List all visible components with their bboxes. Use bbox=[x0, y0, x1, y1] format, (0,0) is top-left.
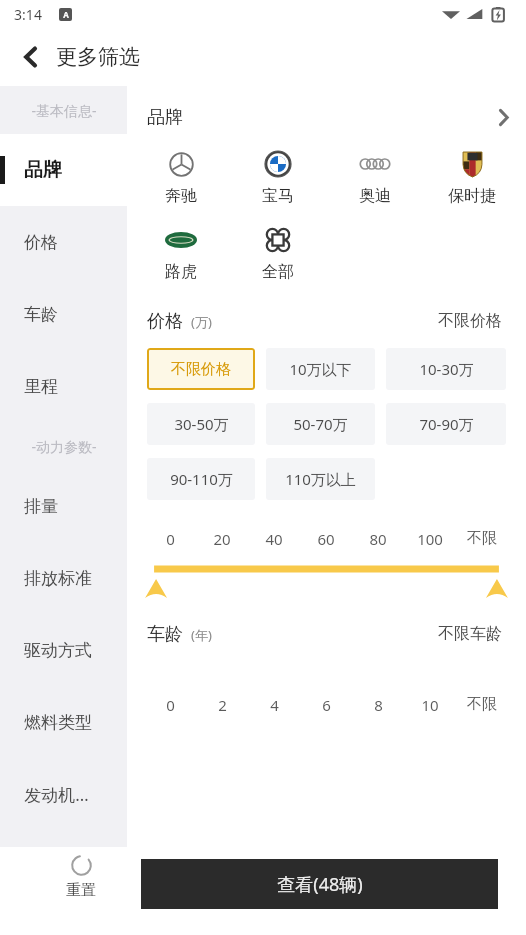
staticText: 0 bbox=[166, 529, 175, 549]
staticText: 路虎 bbox=[165, 262, 197, 282]
staticText: (年) bbox=[191, 626, 212, 644]
button[interactable]: 路虎 bbox=[133, 224, 229, 282]
staticText: 查看(48辆) bbox=[277, 872, 363, 897]
staticText: 全部 bbox=[262, 262, 294, 282]
staticText: 2 bbox=[218, 695, 227, 715]
staticText: 40 bbox=[265, 529, 283, 549]
staticText: 奔驰 bbox=[165, 186, 197, 206]
staticText: 重置 bbox=[66, 881, 96, 900]
staticText: 不限价格 bbox=[171, 360, 231, 379]
staticText: -动力参数- bbox=[31, 437, 97, 456]
button[interactable]: 30-50万 bbox=[147, 403, 255, 445]
staticText: 车龄 bbox=[24, 304, 58, 325]
button[interactable]: 燃料类型 bbox=[0, 686, 127, 758]
button[interactable]: 全部 bbox=[229, 224, 326, 282]
staticText: 8 bbox=[374, 695, 383, 715]
button[interactable]: 排量 bbox=[0, 470, 127, 542]
staticText: 不限价格 bbox=[438, 311, 502, 331]
staticText: 60 bbox=[317, 529, 335, 549]
staticText: 驱动方式 bbox=[24, 640, 92, 661]
staticText: 燃料类型 bbox=[24, 712, 92, 733]
button[interactable]: 价格 bbox=[0, 206, 127, 278]
button[interactable]: 50-70万 bbox=[266, 403, 375, 445]
button[interactable]: 品牌 bbox=[0, 134, 127, 206]
staticText: 排量 bbox=[24, 496, 58, 517]
staticText: A bbox=[63, 9, 69, 20]
staticText: 10万以下 bbox=[289, 359, 352, 379]
staticText: 90-110万 bbox=[170, 469, 233, 489]
button[interactable]: 排放标准 bbox=[0, 542, 127, 614]
staticText: 110万以上 bbox=[285, 469, 356, 489]
staticText: 3:14 bbox=[14, 5, 42, 24]
button[interactable]: All brands bbox=[480, 94, 526, 140]
staticText: 不限 bbox=[467, 529, 497, 548]
button[interactable]: 重置 bbox=[50, 855, 112, 900]
staticText: 奥迪 bbox=[359, 186, 391, 206]
button[interactable]: 70-90万 bbox=[386, 403, 506, 445]
staticText: 70-90万 bbox=[419, 414, 474, 434]
button[interactable]: 奥迪 bbox=[326, 148, 423, 206]
staticText: 价格 bbox=[24, 232, 58, 253]
button[interactable]: 110万以上 bbox=[266, 458, 375, 500]
staticText: 30-50万 bbox=[174, 414, 229, 434]
staticText: 发动机… bbox=[24, 783, 89, 806]
staticText: 20 bbox=[213, 529, 231, 549]
button[interactable]: 奔驰 bbox=[133, 148, 229, 206]
staticText: 保时捷 bbox=[448, 186, 496, 206]
staticText: 车龄 bbox=[147, 623, 183, 646]
staticText: 品牌 bbox=[24, 158, 62, 182]
button[interactable]: 宝马 bbox=[229, 148, 326, 206]
button[interactable]: Back bbox=[8, 34, 54, 80]
button[interactable]: 发动机… bbox=[0, 758, 127, 830]
staticText: 80 bbox=[369, 529, 387, 549]
staticText: 排放标准 bbox=[24, 568, 92, 589]
staticText: 100 bbox=[417, 529, 443, 549]
button[interactable]: 保时捷 bbox=[423, 148, 520, 206]
staticText: 不限车龄 bbox=[438, 624, 502, 644]
staticText: 品牌 bbox=[147, 106, 183, 129]
staticText: 不限 bbox=[467, 695, 497, 714]
button[interactable]: 里程 bbox=[0, 350, 127, 422]
staticText: 宝马 bbox=[262, 186, 294, 206]
staticText: 价格 bbox=[147, 310, 183, 333]
staticText: 更多筛选 bbox=[56, 44, 140, 70]
staticText: 6 bbox=[322, 695, 331, 715]
staticText: 0 bbox=[166, 695, 175, 715]
button[interactable]: 车龄 bbox=[0, 278, 127, 350]
staticText: 10-30万 bbox=[419, 359, 474, 379]
staticText: 4 bbox=[270, 695, 279, 715]
staticText: -基本信息- bbox=[31, 101, 97, 120]
button[interactable]: 10万以下 bbox=[266, 348, 375, 390]
button[interactable]: 驱动方式 bbox=[0, 614, 127, 686]
button[interactable]: 查看(48辆) bbox=[141, 859, 498, 909]
button[interactable]: 90-110万 bbox=[147, 458, 255, 500]
staticText: (万) bbox=[191, 313, 212, 331]
staticText: 里程 bbox=[24, 376, 58, 397]
staticText: 10 bbox=[421, 695, 439, 715]
button[interactable]: 不限价格 bbox=[147, 348, 255, 390]
button[interactable]: 10-30万 bbox=[386, 348, 506, 390]
staticText: 50-70万 bbox=[293, 414, 348, 434]
